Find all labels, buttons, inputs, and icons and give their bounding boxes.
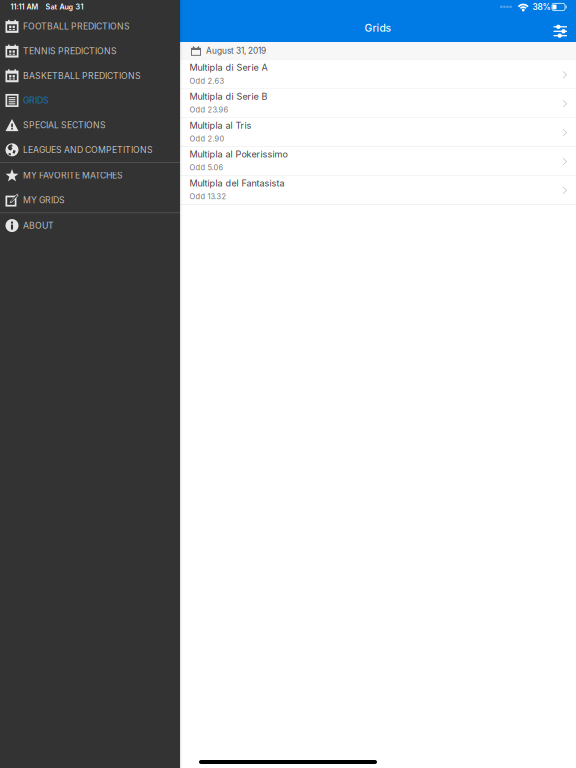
- staticText: 38%: [532, 2, 550, 12]
- button[interactable]: Multipla del Fantasista: [180, 176, 576, 205]
- staticText: Multipla del Fantasista: [189, 178, 284, 189]
- button[interactable]: TENNIS PREDICTIONS: [0, 39, 180, 63]
- staticText: August 31, 2019: [206, 46, 266, 56]
- staticText: Odd 13.32: [189, 192, 226, 201]
- button[interactable]: ABOUT: [0, 213, 180, 238]
- staticText: 11:11 AM: [10, 3, 38, 11]
- staticText: MY GRIDS: [23, 195, 65, 205]
- staticText: SPECIAL SECTIONS: [23, 120, 106, 130]
- button[interactable]: GRIDS: [0, 88, 180, 113]
- button[interactable]: SPECIAL SECTIONS: [0, 113, 180, 137]
- staticText: Odd 5.06: [189, 163, 223, 172]
- staticText: Multipla al Pokerissimo: [189, 149, 287, 160]
- staticText: Multipla al Tris: [189, 120, 251, 131]
- button[interactable]: MY GRIDS: [0, 188, 180, 212]
- staticText: Multipla di Serie A: [189, 62, 267, 73]
- staticText: Odd 2.90: [189, 134, 224, 143]
- staticText: ABOUT: [23, 220, 54, 231]
- staticText: Sat Aug 31: [45, 3, 83, 11]
- staticText: BASKETBALL PREDICTIONS: [23, 70, 141, 81]
- button[interactable]: Multipla di Serie A: [180, 60, 576, 89]
- staticText: LEAGUES AND COMPETITIONS: [23, 145, 153, 155]
- staticText: MY FAVORITE MATCHES: [23, 170, 123, 181]
- button[interactable]: LEAGUES AND COMPETITIONS: [0, 137, 180, 162]
- button[interactable]: Filter: [548, 22, 572, 40]
- staticText: Odd 23.96: [189, 105, 228, 114]
- button[interactable]: Multipla al Pokerissimo: [180, 147, 576, 176]
- staticText: TENNIS PREDICTIONS: [23, 46, 117, 56]
- staticText: Odd 2.63: [189, 76, 224, 85]
- button[interactable]: MY FAVORITE MATCHES: [0, 163, 180, 188]
- button[interactable]: Multipla al Tris: [180, 118, 576, 147]
- staticText: FOOTBALL PREDICTIONS: [23, 21, 130, 32]
- button[interactable]: FOOTBALL PREDICTIONS: [0, 14, 180, 39]
- staticText: GRIDS: [23, 95, 49, 106]
- button[interactable]: Multipla di Serie B: [180, 89, 576, 118]
- staticText: Multipla di Serie B: [189, 91, 267, 102]
- staticText: Grids: [364, 22, 391, 34]
- button[interactable]: BASKETBALL PREDICTIONS: [0, 63, 180, 88]
